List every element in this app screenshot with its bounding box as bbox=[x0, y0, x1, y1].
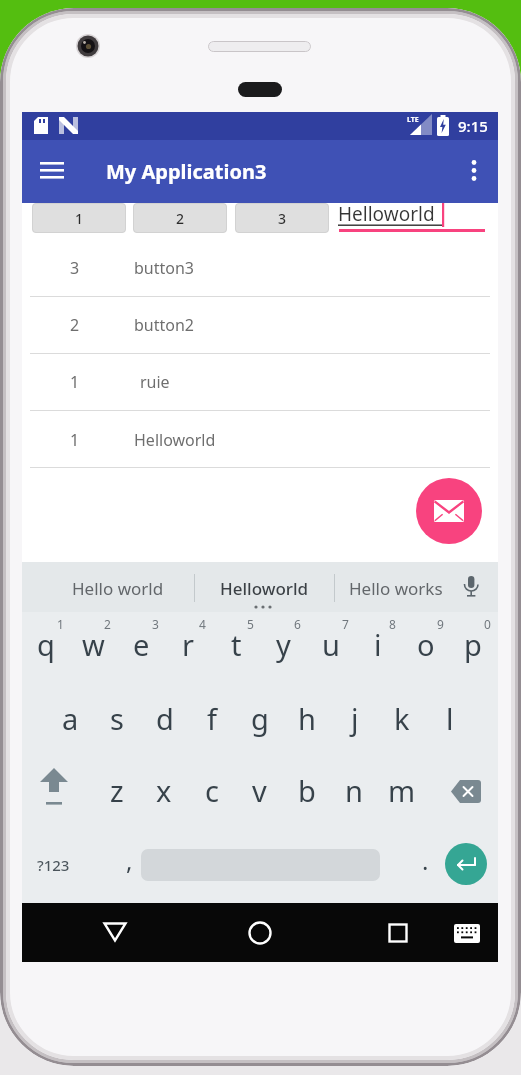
button[interactable]: 2 bbox=[133, 203, 227, 233]
button[interactable] bbox=[461, 576, 481, 600]
button[interactable]: t bbox=[213, 608, 259, 680]
button[interactable]: i bbox=[355, 608, 401, 680]
button[interactable] bbox=[103, 922, 127, 943]
staticText: h bbox=[298, 699, 316, 738]
button[interactable] bbox=[451, 780, 481, 803]
staticText: f bbox=[207, 699, 217, 738]
button[interactable]: l bbox=[427, 682, 473, 754]
button[interactable]: b bbox=[284, 754, 330, 826]
staticText: 1 bbox=[70, 429, 80, 451]
staticText: r bbox=[182, 625, 194, 664]
button[interactable]: f bbox=[189, 682, 235, 754]
button[interactable]: o bbox=[403, 608, 449, 680]
staticText: m bbox=[388, 771, 416, 810]
staticText: Hello world bbox=[72, 577, 164, 600]
staticText: 8 bbox=[389, 616, 396, 632]
button[interactable] bbox=[454, 924, 480, 943]
staticText: a bbox=[62, 699, 79, 738]
staticText: p bbox=[464, 625, 482, 664]
staticText: 3 bbox=[278, 209, 287, 228]
button[interactable] bbox=[340, 562, 456, 612]
staticText: 2 bbox=[176, 209, 185, 228]
button[interactable] bbox=[22, 412, 498, 469]
staticText: , bbox=[126, 844, 133, 877]
button[interactable] bbox=[402, 837, 447, 895]
staticText: w bbox=[82, 625, 105, 664]
staticText: My Application3 bbox=[106, 158, 267, 185]
button[interactable]: z bbox=[94, 754, 140, 826]
button[interactable]: q bbox=[23, 608, 69, 680]
staticText: t bbox=[231, 625, 242, 664]
button[interactable]: w bbox=[70, 608, 116, 680]
button[interactable]: 1 bbox=[32, 203, 126, 233]
staticText: ruie bbox=[140, 371, 170, 393]
staticText: 6 bbox=[294, 616, 301, 632]
button[interactable] bbox=[107, 837, 152, 895]
staticText: 2 bbox=[104, 616, 111, 632]
button[interactable]: y bbox=[260, 608, 306, 680]
button[interactable]: m bbox=[379, 754, 425, 826]
staticText: d bbox=[156, 699, 174, 738]
staticText: button2 bbox=[134, 314, 195, 336]
staticText: Helloworld bbox=[134, 429, 216, 451]
button[interactable] bbox=[337, 200, 487, 234]
button[interactable] bbox=[22, 354, 498, 411]
staticText: LTE bbox=[407, 115, 419, 125]
staticText: s bbox=[110, 699, 124, 738]
staticText: ?123 bbox=[37, 855, 70, 875]
button[interactable] bbox=[40, 159, 64, 183]
button[interactable] bbox=[22, 240, 498, 297]
staticText: b bbox=[298, 771, 316, 810]
staticText: i bbox=[374, 625, 382, 664]
staticText: o bbox=[417, 625, 435, 664]
staticText: x bbox=[156, 771, 172, 810]
button[interactable] bbox=[388, 923, 410, 945]
staticText: l bbox=[446, 699, 454, 738]
staticText: 0 bbox=[484, 616, 491, 632]
button[interactable]: u bbox=[308, 608, 354, 680]
staticText: Hello works bbox=[349, 577, 443, 600]
staticText: 9:15 bbox=[458, 116, 488, 136]
button[interactable] bbox=[57, 562, 187, 612]
button[interactable]: h bbox=[284, 682, 330, 754]
staticText: 4 bbox=[199, 616, 206, 632]
staticText: z bbox=[110, 771, 124, 810]
staticText: 2 bbox=[70, 314, 80, 336]
button[interactable] bbox=[416, 478, 482, 544]
button[interactable] bbox=[202, 562, 327, 612]
staticText: 1 bbox=[57, 616, 64, 632]
staticText: v bbox=[252, 771, 267, 810]
staticText: Helloworld bbox=[338, 201, 435, 227]
button[interactable]: a bbox=[47, 682, 93, 754]
staticText: n bbox=[345, 771, 363, 810]
button[interactable]: c bbox=[189, 754, 235, 826]
button[interactable]: v bbox=[236, 754, 282, 826]
staticText: 1 bbox=[70, 371, 80, 393]
staticText: y bbox=[276, 625, 291, 664]
staticText: button3 bbox=[134, 257, 195, 279]
staticText: u bbox=[322, 625, 340, 664]
button[interactable] bbox=[39, 768, 69, 812]
button[interactable]: e bbox=[118, 608, 164, 680]
button[interactable]: g bbox=[237, 682, 283, 754]
button[interactable] bbox=[22, 297, 498, 354]
button[interactable]: j bbox=[332, 682, 378, 754]
staticText: 5 bbox=[247, 616, 254, 632]
staticText: 3 bbox=[152, 616, 159, 632]
button[interactable] bbox=[445, 843, 487, 885]
staticText: Helloworld bbox=[220, 577, 309, 600]
button[interactable]: s bbox=[94, 682, 140, 754]
button[interactable]: p bbox=[450, 608, 496, 680]
button[interactable] bbox=[22, 837, 84, 895]
button[interactable]: 3 bbox=[235, 203, 329, 233]
button[interactable] bbox=[248, 922, 272, 946]
button[interactable]: r bbox=[165, 608, 211, 680]
button[interactable] bbox=[462, 159, 486, 183]
button[interactable]: x bbox=[141, 754, 187, 826]
staticText: g bbox=[251, 699, 269, 738]
button[interactable]: d bbox=[142, 682, 188, 754]
staticText: k bbox=[394, 699, 410, 738]
button[interactable]: k bbox=[379, 682, 425, 754]
button[interactable]: n bbox=[331, 754, 377, 826]
